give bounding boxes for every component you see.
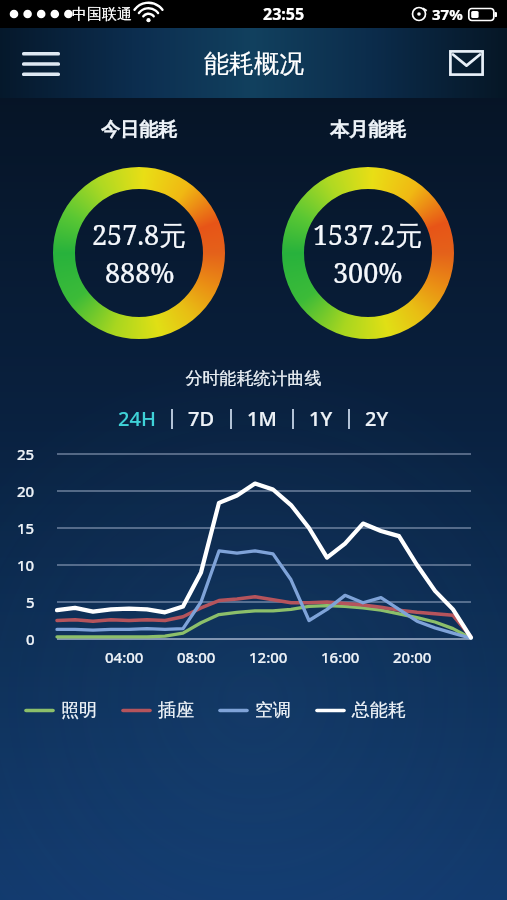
- staticText: 分时能耗统计曲线: [0, 368, 507, 389]
- button[interactable]: 1Y: [306, 401, 336, 436]
- staticText: 1537.2元: [313, 216, 423, 253]
- button[interactable]: 7D: [185, 401, 218, 436]
- staticText: 2Y: [365, 405, 389, 432]
- staticText: 1Y: [309, 405, 333, 432]
- staticText: 总能耗: [352, 699, 406, 722]
- staticText: 15: [17, 518, 35, 538]
- staticText: 16:00: [321, 647, 360, 667]
- button[interactable]: Messages: [439, 40, 493, 86]
- button[interactable]: 插座: [123, 694, 194, 727]
- button[interactable]: 照明: [26, 694, 97, 727]
- staticText: 257.8元: [92, 216, 187, 253]
- staticText: 空调: [255, 699, 291, 722]
- staticText: 中国联通: [72, 5, 132, 24]
- staticText: 300%: [333, 254, 403, 291]
- staticText: 本月能耗: [330, 118, 406, 142]
- button[interactable]: 1M: [244, 401, 280, 436]
- staticText: 7D: [188, 405, 215, 432]
- staticText: 能耗概况: [204, 48, 304, 79]
- staticText: 24H: [118, 405, 156, 432]
- staticText: 1M: [247, 405, 277, 432]
- staticText: 5: [26, 592, 35, 612]
- button[interactable]: 24H: [115, 401, 159, 436]
- button[interactable]: 2Y: [362, 401, 392, 436]
- staticText: 20: [17, 481, 35, 501]
- button[interactable]: Menu: [12, 38, 70, 88]
- staticText: 04:00: [105, 647, 144, 667]
- staticText: 25: [17, 444, 35, 464]
- staticText: 37%: [432, 4, 463, 24]
- staticText: 20:00: [393, 647, 432, 667]
- staticText: 插座: [158, 699, 194, 722]
- staticText: 08:00: [177, 647, 216, 667]
- button[interactable]: 总能耗: [317, 694, 406, 727]
- staticText: 888%: [105, 254, 175, 291]
- button[interactable]: 空调: [220, 694, 291, 727]
- staticText: 23:55: [263, 3, 305, 25]
- staticText: 照明: [61, 699, 97, 722]
- staticText: 10: [17, 555, 35, 575]
- staticText: 0: [26, 629, 35, 649]
- staticText: 今日能耗: [101, 118, 177, 142]
- staticText: 12:00: [249, 647, 288, 667]
